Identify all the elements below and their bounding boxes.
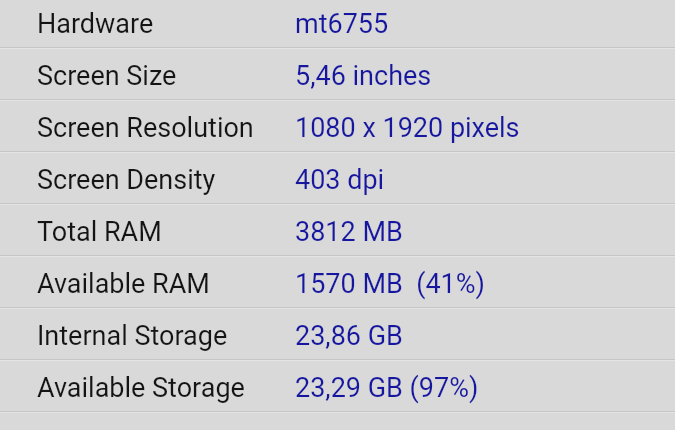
staticText: Screen Resolution — [37, 112, 254, 144]
staticText: 5,46 inches — [295, 60, 432, 92]
staticText: 23,29 GB (97%) — [295, 372, 479, 404]
staticText: 1570 MB (41%) — [295, 268, 485, 300]
button[interactable]: Screen Resolution — [0, 101, 675, 151]
staticText: Total RAM — [37, 216, 162, 248]
button[interactable]: Screen Density — [0, 153, 675, 203]
button[interactable]: Hardware — [0, 0, 675, 47]
staticText: Screen Size — [37, 60, 177, 92]
button[interactable]: Available Storage — [0, 361, 675, 411]
button[interactable]: Available RAM — [0, 257, 675, 307]
staticText: Internal Storage — [37, 320, 228, 352]
staticText: 3812 MB — [295, 216, 403, 248]
staticText: Available Storage — [37, 372, 245, 404]
staticText: Screen Density — [37, 164, 216, 196]
button[interactable]: Screen Size — [0, 49, 675, 99]
staticText: 23,86 GB — [295, 320, 403, 352]
staticText: Hardware — [37, 8, 154, 40]
staticText: 403 dpi — [295, 164, 385, 196]
button[interactable]: Total RAM — [0, 205, 675, 255]
staticText: 1080 x 1920 pixels — [295, 112, 520, 144]
button[interactable]: Internal Storage — [0, 309, 675, 359]
staticText: mt6755 — [295, 8, 389, 40]
staticText: Available RAM — [37, 268, 210, 300]
